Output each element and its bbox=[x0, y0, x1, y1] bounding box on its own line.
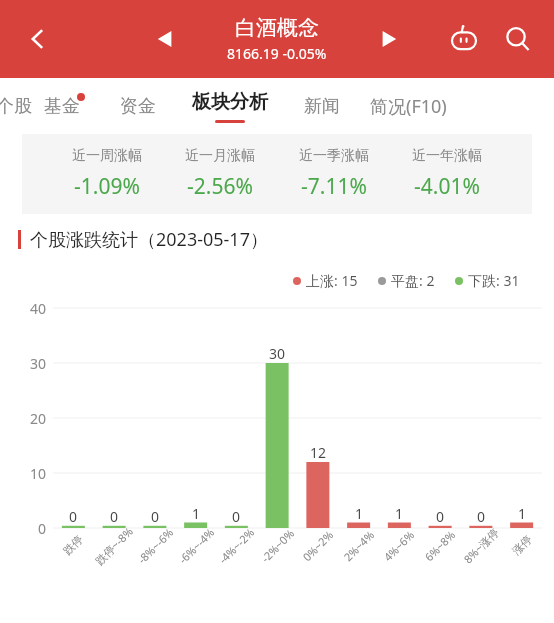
staticText: 近一月涨幅 bbox=[185, 147, 255, 165]
staticText: 0 bbox=[14, 519, 46, 538]
staticText: 1 bbox=[341, 504, 377, 523]
staticText: 8%~涨停 bbox=[460, 525, 502, 566]
button[interactable]: Back bbox=[14, 15, 62, 63]
staticText: 跌停~-8% bbox=[92, 523, 136, 568]
staticText: -4%~-2% bbox=[215, 524, 258, 567]
button[interactable]: 新闻 bbox=[296, 87, 348, 126]
staticText: -6%~-4% bbox=[175, 524, 218, 567]
staticText: 10 bbox=[14, 464, 46, 483]
staticText: 上涨: 15 bbox=[306, 271, 358, 290]
staticText: 40 bbox=[14, 299, 46, 318]
staticText: 简况(F10) bbox=[370, 94, 447, 119]
staticText: 近一周涨幅 bbox=[72, 147, 142, 165]
button[interactable]: 资金 bbox=[112, 87, 164, 126]
staticText: 30 bbox=[14, 354, 46, 373]
staticText: 30 bbox=[259, 344, 295, 363]
staticText: 跌停 bbox=[60, 532, 86, 558]
button[interactable]: 板块分析 bbox=[186, 90, 274, 123]
staticText: 12 bbox=[300, 443, 336, 462]
staticText: 2%~4% bbox=[340, 527, 378, 564]
staticText: 新闻 bbox=[304, 95, 340, 118]
staticText: 白酒概念 bbox=[235, 15, 319, 41]
staticText: 1 bbox=[178, 504, 214, 523]
staticText: 20 bbox=[14, 409, 46, 428]
staticText: -4.01% bbox=[414, 172, 480, 201]
staticText: 近一年涨幅 bbox=[412, 147, 482, 165]
staticText: 0 bbox=[55, 507, 91, 526]
staticText: 近一季涨幅 bbox=[299, 147, 369, 165]
button[interactable]: 简况(F10) bbox=[366, 86, 451, 127]
button[interactable]: Next sector bbox=[368, 18, 410, 60]
staticText: -1.09% bbox=[74, 172, 140, 201]
button[interactable]: Search bbox=[496, 17, 540, 61]
button[interactable]: Assistant bbox=[442, 17, 486, 61]
staticText: 基金 bbox=[44, 95, 80, 118]
button[interactable]: 近一周涨幅 bbox=[22, 134, 532, 214]
staticText: 个股 bbox=[0, 95, 32, 118]
staticText: -2.56% bbox=[187, 172, 253, 201]
button[interactable]: 基金 bbox=[36, 87, 88, 126]
staticText: 0 bbox=[422, 507, 458, 526]
staticText: 下跌: 31 bbox=[468, 271, 520, 290]
staticText: 0 bbox=[96, 507, 132, 526]
staticText: 0%~2% bbox=[299, 527, 337, 564]
staticText: 个股涨跌统计（2023-05-17） bbox=[30, 227, 268, 252]
staticText: 0 bbox=[218, 507, 254, 526]
staticText: 1 bbox=[504, 504, 540, 523]
staticText: -7.11% bbox=[301, 172, 367, 201]
staticText: 4%~6% bbox=[380, 527, 418, 564]
staticText: 资金 bbox=[120, 95, 156, 118]
button[interactable]: 个股 bbox=[0, 87, 42, 126]
staticText: 涨停 bbox=[509, 532, 535, 558]
staticText: 板块分析 bbox=[192, 90, 268, 114]
staticText: 0 bbox=[137, 507, 173, 526]
staticText: 0 bbox=[463, 507, 499, 526]
staticText: 平盘: 2 bbox=[391, 271, 435, 290]
staticText: 8166.19 -0.05% bbox=[227, 44, 327, 63]
staticText: -8%~-6% bbox=[134, 524, 177, 567]
staticText: 6%~8% bbox=[421, 527, 459, 564]
staticText: 1 bbox=[381, 504, 417, 523]
staticText: -2%~0% bbox=[258, 526, 297, 565]
button[interactable]: Previous sector bbox=[144, 18, 186, 60]
